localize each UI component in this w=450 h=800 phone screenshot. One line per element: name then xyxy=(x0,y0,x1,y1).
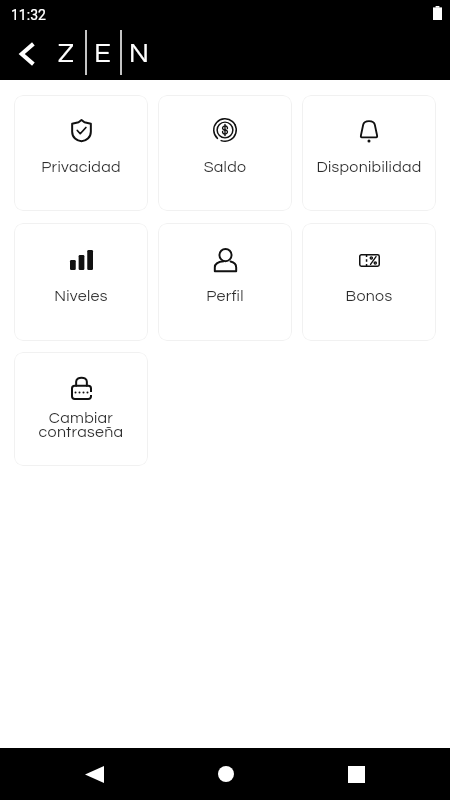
staticText: N xyxy=(129,40,149,68)
button[interactable]: Niveles xyxy=(14,223,148,341)
button[interactable]: Disponibilidad xyxy=(302,95,436,211)
button[interactable]: Back xyxy=(8,35,48,75)
button[interactable]: Cambiar contraseña xyxy=(14,352,148,466)
staticText: Disponibilidad xyxy=(304,159,434,175)
staticText: Privacidad xyxy=(16,159,146,175)
button[interactable]: Home xyxy=(184,750,267,798)
button[interactable]: Recents xyxy=(315,750,398,798)
staticText: Saldo xyxy=(160,159,290,175)
staticText: Perfil xyxy=(160,288,290,304)
button[interactable]: Saldo xyxy=(158,95,292,211)
button[interactable]: Bonos xyxy=(302,223,436,341)
button[interactable]: Perfil xyxy=(158,223,292,341)
staticText: 11:32 xyxy=(11,7,46,23)
button[interactable]: Back xyxy=(53,750,136,798)
staticText: Cambiar contraseña xyxy=(16,410,146,440)
button[interactable]: Privacidad xyxy=(14,95,148,211)
staticText: Bonos xyxy=(304,288,434,304)
staticText: E xyxy=(94,40,111,68)
staticText: Z xyxy=(58,40,74,68)
staticText: Niveles xyxy=(16,288,146,304)
